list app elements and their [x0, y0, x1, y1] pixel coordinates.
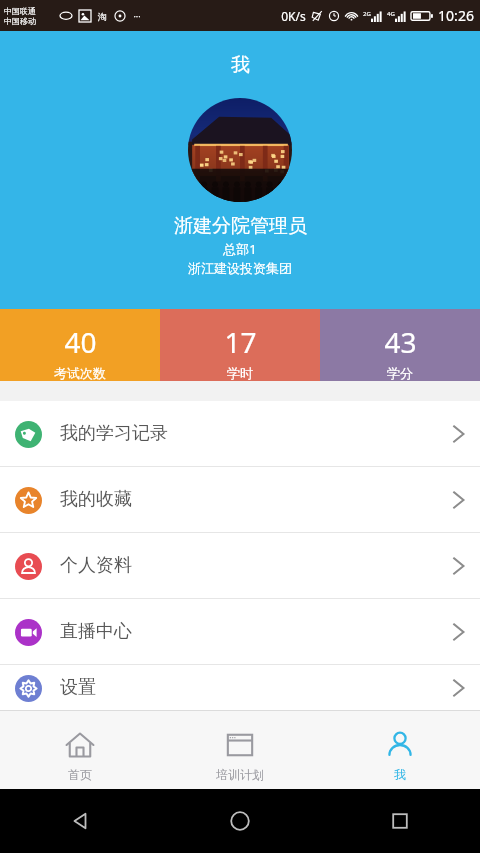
staticText: 浙江建设投资集团	[188, 260, 292, 276]
button[interactable]: 40	[0, 309, 160, 381]
button[interactable]: 我	[320, 719, 480, 782]
staticText: 首页	[68, 767, 92, 782]
button[interactable]: Recent apps	[320, 789, 480, 853]
staticText: 中国移动	[4, 16, 36, 26]
staticText: 我	[231, 53, 250, 77]
staticText: 10:26	[438, 6, 474, 25]
button[interactable]: 设置	[0, 665, 480, 710]
staticText: 考试次数	[54, 365, 106, 381]
button[interactable]: 个人资料	[0, 533, 480, 598]
staticText: 2G	[363, 10, 371, 18]
staticText: 培训计划	[216, 767, 264, 782]
staticText: 总部1	[223, 240, 257, 258]
staticText: 我的学习记录	[60, 422, 168, 445]
button[interactable]: 我的学习记录	[0, 401, 480, 466]
staticText: 淘	[98, 11, 107, 22]
staticText: 个人资料	[60, 554, 132, 577]
staticText: 0K/s	[281, 8, 306, 24]
staticText: 直播中心	[60, 620, 132, 643]
button[interactable]: Profile photo	[188, 98, 292, 202]
button[interactable]: 直播中心	[0, 599, 480, 664]
button[interactable]: Back	[0, 789, 160, 853]
button[interactable]: 17	[160, 309, 320, 381]
button[interactable]: 我的收藏	[0, 467, 480, 532]
staticText: 4G	[387, 10, 395, 18]
staticText: 我的收藏	[60, 488, 132, 511]
staticText: ···	[133, 10, 141, 22]
staticText: 17	[224, 323, 257, 361]
staticText: 浙建分院管理员	[174, 214, 307, 238]
staticText: 43	[384, 323, 417, 361]
button[interactable]: 43	[320, 309, 480, 381]
button[interactable]: Home	[160, 789, 320, 853]
button[interactable]: 培训计划	[160, 719, 320, 782]
staticText: 中国联通	[4, 6, 36, 16]
staticText: 我	[394, 767, 406, 782]
staticText: 学分	[387, 365, 413, 381]
staticText: 40	[64, 323, 97, 361]
staticText: 学时	[227, 365, 253, 381]
button[interactable]: 首页	[0, 719, 160, 782]
staticText: 设置	[60, 676, 96, 699]
